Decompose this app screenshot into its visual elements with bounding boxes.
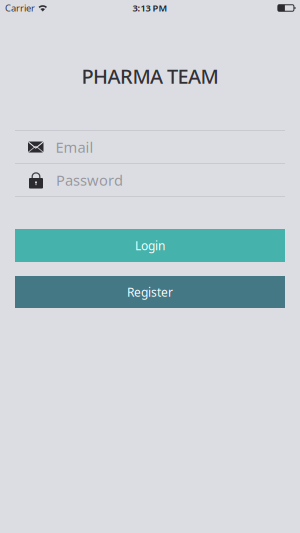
- button[interactable]: Login: [15, 229, 285, 262]
- button[interactable]: Password: [15, 164, 285, 196]
- staticText: Login: [135, 237, 165, 253]
- button[interactable]: Email: [15, 131, 285, 163]
- staticText: Register: [127, 284, 173, 300]
- staticText: Email: [55, 137, 93, 157]
- staticText: 3:13 PM: [132, 2, 167, 14]
- button[interactable]: Register: [15, 276, 285, 308]
- staticText: Password: [56, 170, 123, 190]
- staticText: Carrier: [5, 2, 35, 14]
- staticText: PHARMA TEAM: [81, 63, 218, 89]
